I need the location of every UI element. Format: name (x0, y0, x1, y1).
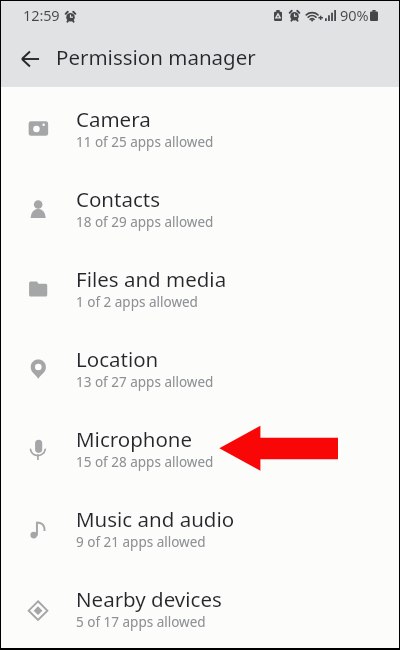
staticText: Contacts (76, 185, 160, 213)
staticText: 5 of 17 apps allowed (76, 613, 206, 631)
button[interactable]: Nearby devices (1, 567, 399, 647)
staticText: 13 of 27 apps allowed (76, 373, 214, 391)
button[interactable]: Camera (1, 87, 399, 167)
staticText: 1 of 2 apps allowed (76, 293, 198, 311)
staticText: 11 of 25 apps allowed (76, 133, 214, 151)
button[interactable]: Files and media (1, 247, 399, 327)
staticText: Music and audio (76, 505, 235, 533)
staticText: Permission manager (56, 43, 256, 71)
button[interactable]: Music and audio (1, 487, 399, 567)
staticText: 9 of 21 apps allowed (76, 533, 206, 551)
staticText: Camera (76, 105, 151, 133)
staticText: 90% (340, 5, 369, 25)
staticText: Location (76, 345, 159, 373)
staticText: Microphone (76, 425, 193, 453)
button[interactable]: Back (12, 41, 48, 77)
staticText: Files and media (76, 265, 227, 293)
button[interactable]: Contacts (1, 167, 399, 247)
button[interactable]: Microphone (1, 407, 399, 487)
staticText: 15 of 28 apps allowed (76, 453, 214, 471)
staticText: 18 of 29 apps allowed (76, 213, 214, 231)
staticText: Nearby devices (76, 585, 222, 613)
button[interactable]: Location (1, 327, 399, 407)
staticText: 12:59 (23, 5, 60, 25)
